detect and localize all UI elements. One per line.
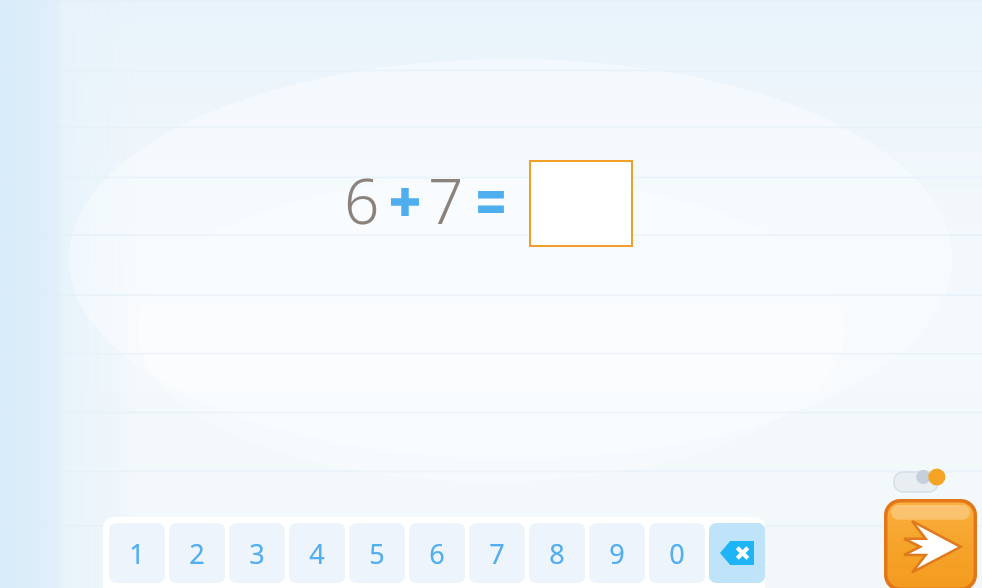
button[interactable]: Backspace — [709, 523, 765, 583]
button[interactable]: Answer field — [529, 160, 633, 247]
button[interactable]: 3 — [229, 523, 285, 583]
staticText: 8 — [549, 535, 565, 572]
staticText: 9 — [609, 535, 625, 572]
staticText: 2 — [189, 535, 205, 572]
button[interactable]: 8 — [529, 523, 585, 583]
staticText: 1 — [129, 535, 145, 572]
staticText: 6 — [344, 158, 380, 242]
button[interactable]: 4 — [289, 523, 345, 583]
staticText: 7 — [428, 158, 464, 242]
button[interactable]: 0 — [649, 523, 705, 583]
button[interactable]: 5 — [349, 523, 405, 583]
button[interactable]: 1 — [109, 523, 165, 583]
staticText: 6 — [429, 535, 445, 572]
staticText: 3 — [249, 535, 265, 572]
button[interactable]: 9 — [589, 523, 645, 583]
staticText: 0 — [669, 535, 685, 572]
staticText: 4 — [309, 535, 325, 572]
staticText: 7 — [489, 535, 505, 572]
button[interactable]: 6 — [409, 523, 465, 583]
button[interactable]: 2 — [169, 523, 225, 583]
staticText: 5 — [369, 535, 385, 572]
button[interactable]: Next — [884, 499, 977, 588]
button[interactable]: 7 — [469, 523, 525, 583]
